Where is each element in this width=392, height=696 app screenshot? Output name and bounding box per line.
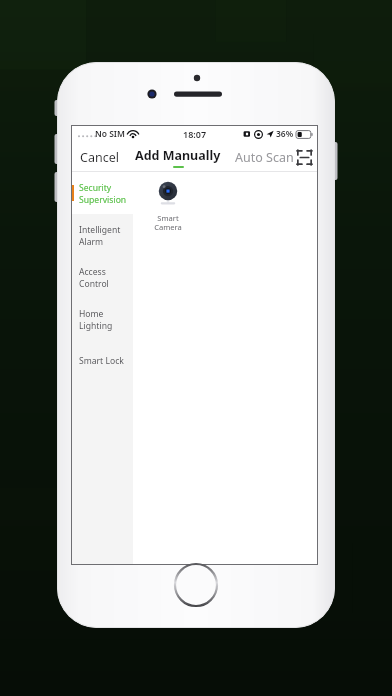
staticText: Cancel — [80, 149, 119, 166]
staticText: Smart Camera — [154, 213, 182, 233]
staticText: Smart Lock — [79, 355, 124, 367]
staticText: Intelligent Alarm — [79, 224, 121, 247]
button[interactable]: Access Control — [71, 256, 133, 298]
button[interactable]: Intelligent Alarm — [71, 214, 133, 256]
button[interactable]: Smart Lock — [71, 340, 133, 382]
staticText: No SIM — [95, 128, 125, 140]
button[interactable]: Cancel — [78, 146, 121, 169]
button[interactable]: Auto Scan — [233, 146, 296, 169]
staticText: 18:07 — [183, 128, 207, 140]
button[interactable]: Add Manually — [133, 146, 223, 169]
staticText: 36% — [276, 128, 294, 140]
button[interactable]: Scan QR code — [296, 146, 312, 168]
staticText: Access Control — [79, 266, 109, 289]
button[interactable]: Smart Camera — [146, 179, 190, 235]
button[interactable]: Security Supervision — [71, 172, 133, 214]
staticText: Auto Scan — [235, 149, 294, 166]
staticText: Add Manually — [135, 147, 221, 164]
staticText: Home Lighting — [79, 308, 113, 331]
staticText: Security Supervision — [79, 182, 127, 205]
button[interactable]: Home Lighting — [71, 298, 133, 340]
